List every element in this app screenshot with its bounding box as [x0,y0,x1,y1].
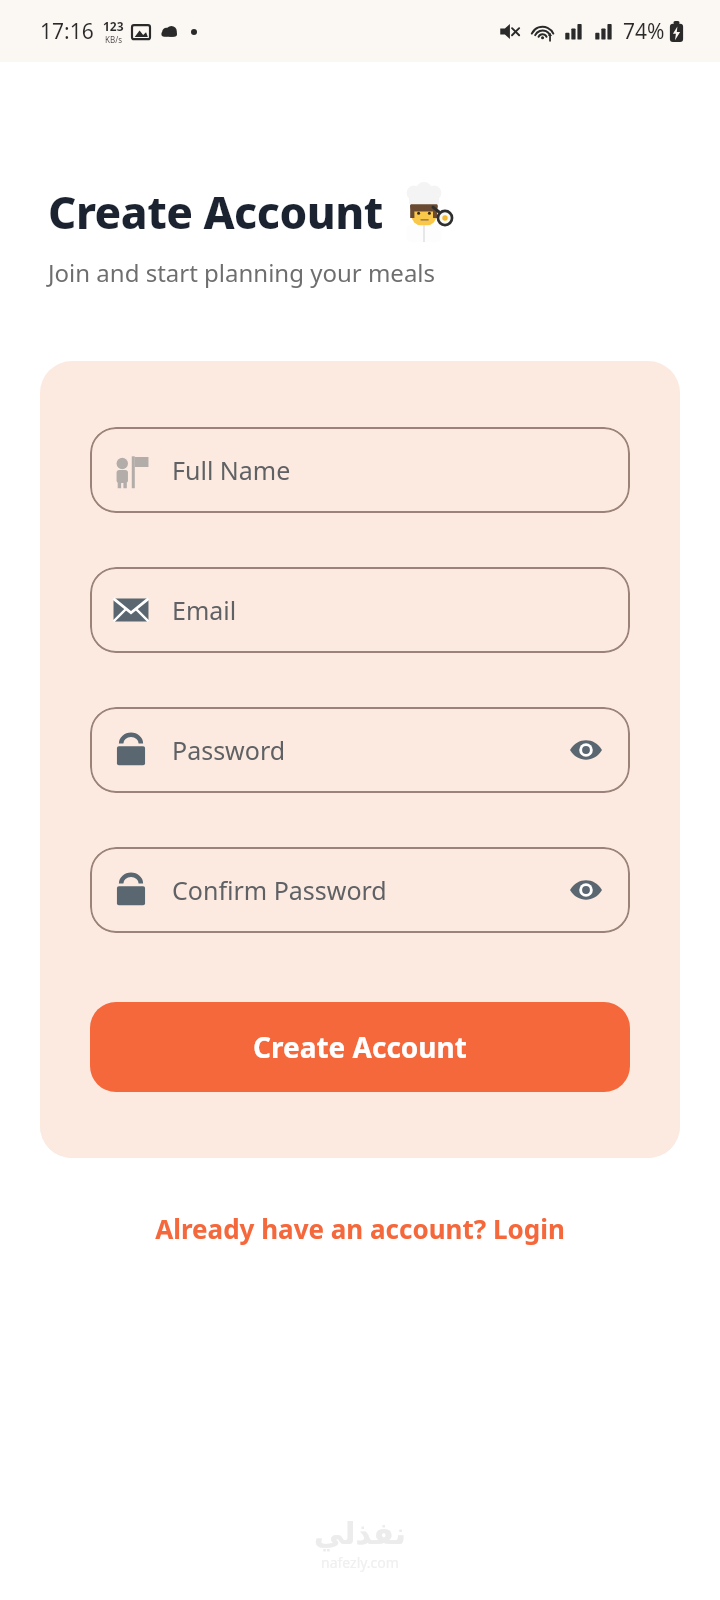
button[interactable]: Show password [564,728,608,772]
staticText: Full Name [172,453,608,487]
staticText: 74% [623,17,665,46]
staticText: Join and start planning your meals [48,256,436,289]
staticText: Create Account [253,1028,467,1066]
staticText: نفذلي [314,1516,406,1551]
button[interactable]: Create Account [90,1002,630,1092]
staticText: nafezly.com [321,1553,399,1572]
button[interactable]: Password [90,707,630,793]
staticText: KB/s [105,34,122,45]
staticText: Already have an account? Login [155,1211,565,1246]
button[interactable]: Confirm Password [90,847,630,933]
staticText: Confirm Password [172,873,564,907]
staticText: 123 [103,18,124,34]
button[interactable]: Email [90,567,630,653]
staticText: 17:16 [40,17,94,46]
button[interactable]: Show password [564,868,608,912]
staticText: Create Account [48,182,383,242]
button[interactable]: Full Name [90,427,630,513]
button[interactable]: Already have an account? Login [131,1199,589,1258]
staticText: Password [172,733,564,767]
staticText: Email [172,593,608,627]
